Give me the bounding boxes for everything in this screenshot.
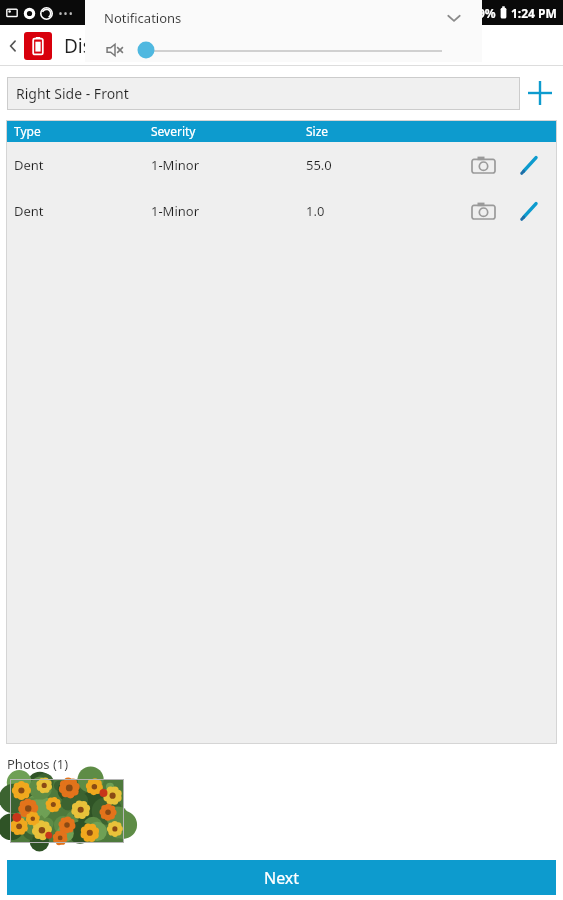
button[interactable]: Right Side - Front <box>7 77 520 110</box>
staticText: Displ <box>64 33 109 59</box>
button[interactable]: Dent <box>6 142 557 188</box>
staticText: Dent <box>14 156 44 174</box>
staticText: 1.0 <box>306 202 325 220</box>
staticText: Right Side - Front <box>16 84 129 103</box>
staticText: • • • <box>59 8 73 19</box>
button[interactable]: Next <box>7 860 556 895</box>
button[interactable]: Back <box>3 36 23 56</box>
button[interactable]: Take photo <box>461 143 505 187</box>
staticText: 1-Minor <box>151 202 200 220</box>
staticText: Photos (1) <box>7 755 69 773</box>
staticText: Dent <box>14 202 44 220</box>
staticText: Size <box>306 123 329 139</box>
staticText: 9% <box>478 5 496 21</box>
staticText: 1:24 PM <box>511 5 557 21</box>
staticText: Next <box>264 867 300 889</box>
button[interactable]: Edit <box>505 142 553 188</box>
button[interactable]: Expand notifications <box>439 3 469 33</box>
button[interactable]: Take photo <box>461 189 505 233</box>
button[interactable]: Damage photo <box>10 779 124 843</box>
button[interactable]: Dent <box>6 188 557 234</box>
button[interactable]: Edit <box>505 188 553 234</box>
button[interactable]: Notifications <box>85 0 482 36</box>
button[interactable]: Mute <box>104 39 126 61</box>
staticText: 1-Minor <box>151 156 200 174</box>
staticText: Type <box>14 123 41 139</box>
button[interactable]: Add damage <box>520 73 560 113</box>
staticText: Severity <box>151 123 196 139</box>
staticText: 55.0 <box>306 156 332 174</box>
staticText: Notifications <box>104 9 182 27</box>
